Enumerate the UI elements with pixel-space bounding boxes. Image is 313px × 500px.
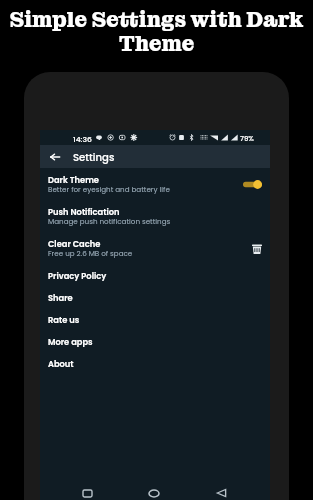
button[interactable]: Privacy Policy bbox=[40, 265, 270, 287]
staticText: Free up 2.6 MB of space bbox=[48, 248, 133, 258]
staticText: 79% bbox=[240, 134, 254, 144]
staticText: Dark Theme bbox=[48, 174, 99, 186]
button[interactable]: Dark theme toggle bbox=[243, 178, 262, 192]
button[interactable]: Back bbox=[211, 485, 231, 500]
staticText: Better for eyesight and battery life bbox=[48, 184, 170, 194]
button[interactable]: About bbox=[40, 353, 270, 375]
button[interactable]: Home bbox=[144, 485, 164, 500]
button[interactable]: Recent apps bbox=[77, 485, 97, 500]
button[interactable]: More apps bbox=[40, 331, 270, 353]
staticText: Privacy Policy bbox=[48, 270, 107, 282]
button[interactable]: Rate us bbox=[40, 309, 270, 331]
staticText: Settings bbox=[73, 150, 115, 164]
button[interactable]: Dark Theme bbox=[40, 169, 270, 201]
staticText: Rate us bbox=[48, 314, 80, 326]
staticText: 14:36 bbox=[73, 134, 92, 145]
button[interactable]: Clear cache bbox=[252, 241, 262, 257]
button[interactable]: Navigate up bbox=[42, 145, 68, 168]
staticText: Share bbox=[48, 292, 73, 304]
staticText: About bbox=[48, 358, 74, 370]
button[interactable]: Clear Cache bbox=[40, 233, 270, 265]
staticText: More apps bbox=[48, 336, 93, 348]
button[interactable]: Push Notification bbox=[40, 201, 270, 233]
staticText: Clear Cache bbox=[48, 238, 101, 250]
button[interactable]: Share bbox=[40, 287, 270, 309]
staticText: Push Notification bbox=[48, 206, 120, 218]
staticText: Simple Settings with Dark Theme bbox=[9, 6, 304, 58]
staticText: Manage push notification settings bbox=[48, 216, 171, 226]
